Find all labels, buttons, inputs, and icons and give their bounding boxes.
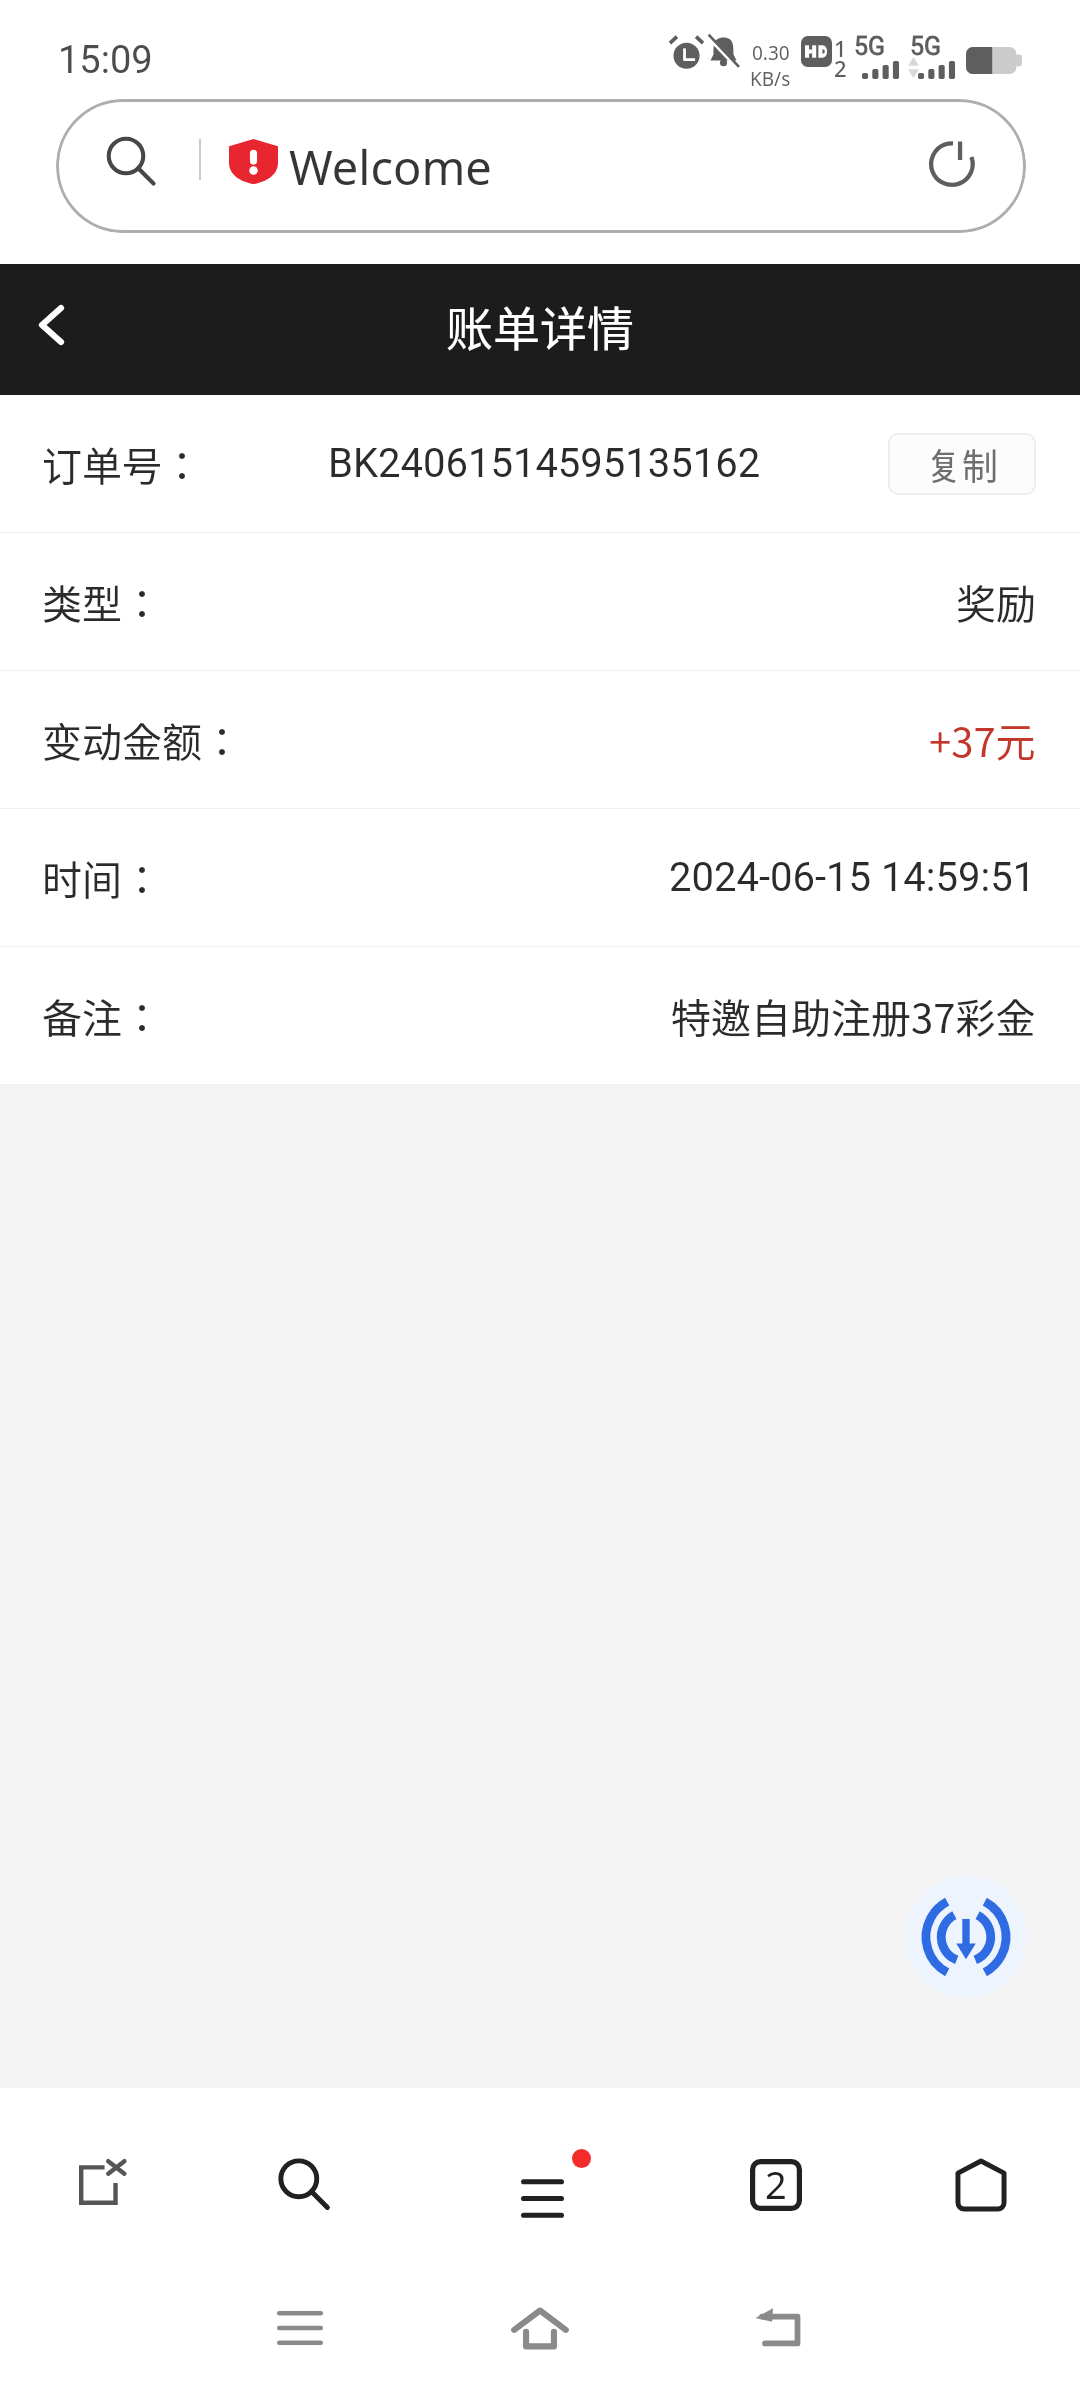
staticText: 特邀自助注册37彩金 [671,987,1036,1045]
staticText: 5G [854,32,886,61]
staticText: 订单号： [42,435,202,493]
button[interactable]: Search [256,2088,352,2268]
staticText: 变动金额： [42,711,242,769]
staticText: 时间： [42,849,162,907]
staticText: 2 [765,2158,787,2210]
button[interactable]: Download [905,1876,1027,1998]
button[interactable]: Home [480,2268,600,2388]
staticText: 2024-06-15 14:59:51 [669,854,1036,901]
staticText: 1 2 [834,33,847,84]
button[interactable]: 时间： [0,809,1080,946]
button[interactable]: Recents [240,2268,360,2388]
button[interactable]: 备注： [0,947,1080,1084]
button[interactable]: Tabs [728,2088,824,2268]
staticText: Welcome [289,135,492,199]
staticText: 15:09 [58,38,153,83]
staticText: KB/s [750,66,791,88]
button[interactable]: Menu [504,2088,600,2268]
staticText: 5G [910,32,942,61]
button[interactable]: New tab [54,2088,150,2268]
button[interactable]: 变动金额： [0,671,1080,808]
button[interactable]: Reload [912,120,996,204]
staticText: 0.30 [752,40,790,66]
staticText: 类型： [42,573,162,631]
button[interactable]: Back [0,264,108,395]
staticText: 账单详情 [446,291,634,359]
staticText: 奖励 [956,573,1036,631]
button[interactable]: 订单号： [0,395,1080,532]
button[interactable]: Home [933,2088,1029,2268]
button[interactable]: 复制 [888,433,1036,495]
button[interactable]: Welcome [56,99,1026,233]
staticText: BK24061514595135162 [328,440,761,487]
button[interactable]: 类型： [0,533,1080,670]
button[interactable]: Back [720,2268,840,2388]
staticText: 复制 [926,438,999,490]
staticText: +37元 [929,711,1036,769]
staticText: 备注： [42,987,162,1045]
